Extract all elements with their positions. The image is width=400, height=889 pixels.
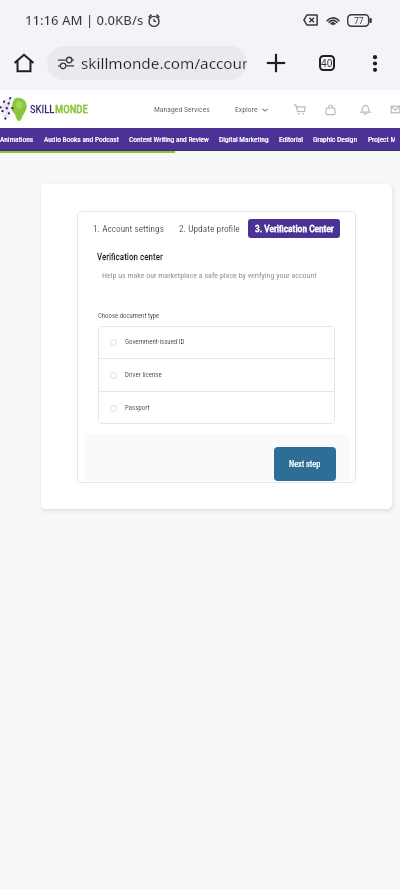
staticText: Choose document type <box>98 312 160 320</box>
button[interactable]: Explore <box>235 105 268 114</box>
button[interactable]: Orders <box>324 103 336 115</box>
staticText: skillmonde.com/account <box>81 53 247 74</box>
button[interactable]: 1. Account settings <box>93 223 164 234</box>
staticText: Editorial <box>279 135 303 144</box>
staticText: Audio Books and Podcast <box>44 135 119 144</box>
staticText: Explore <box>235 105 258 114</box>
button[interactable]: Editorial <box>274 135 308 144</box>
button[interactable]: SKILL <box>0 95 88 123</box>
button[interactable]: Next step <box>274 447 336 481</box>
button[interactable]: 3. Verification Center <box>248 219 340 238</box>
staticText: 11:16 AM | 0.0KB/s <box>25 11 144 29</box>
staticText: Help us make our marketplace a safe plac… <box>102 271 317 280</box>
button[interactable]: Passport <box>98 392 335 424</box>
button[interactable]: New tab <box>258 45 294 81</box>
staticText: Content Writing and Review <box>129 135 209 144</box>
staticText: Government-issued ID <box>125 338 185 346</box>
staticText: MONDE <box>55 103 88 116</box>
staticText: 40 <box>321 56 333 70</box>
button[interactable]: Audio Books and Podcast <box>39 135 124 144</box>
button[interactable]: Animations <box>0 135 39 144</box>
button[interactable]: Digital Marketing <box>214 135 274 144</box>
button[interactable]: Tabs <box>309 45 345 81</box>
staticText: Graphic Design <box>313 135 358 144</box>
button[interactable]: Project Ma <box>363 135 400 144</box>
button[interactable]: Managed Services <box>154 105 210 114</box>
button[interactable]: Cart <box>293 103 305 115</box>
staticText: Driver license <box>125 371 162 379</box>
button[interactable]: Messages <box>391 103 400 115</box>
button[interactable]: More options <box>357 45 393 81</box>
staticText: 77 <box>354 15 364 27</box>
staticText: Project Ma <box>368 135 395 144</box>
staticText: 3. Verification Center <box>255 223 334 234</box>
staticText: SKILL <box>30 103 55 116</box>
button[interactable]: skillmonde.com/account <box>47 46 247 80</box>
staticText: Verification center <box>97 252 163 263</box>
button[interactable]: 2. Update profile <box>179 223 240 234</box>
button[interactable]: Government-issued ID <box>98 326 335 358</box>
staticText: Digital Marketing <box>219 135 269 144</box>
button[interactable]: Graphic Design <box>308 135 363 144</box>
button[interactable]: Driver license <box>98 359 335 391</box>
staticText: Animations <box>0 135 34 144</box>
staticText: Passport <box>125 404 150 412</box>
button[interactable]: Content Writing and Review <box>124 135 214 144</box>
staticText: Managed Services <box>154 105 210 114</box>
staticText: Next step <box>289 459 321 469</box>
button[interactable]: Home <box>7 46 41 80</box>
button[interactable]: Notifications <box>359 103 371 115</box>
